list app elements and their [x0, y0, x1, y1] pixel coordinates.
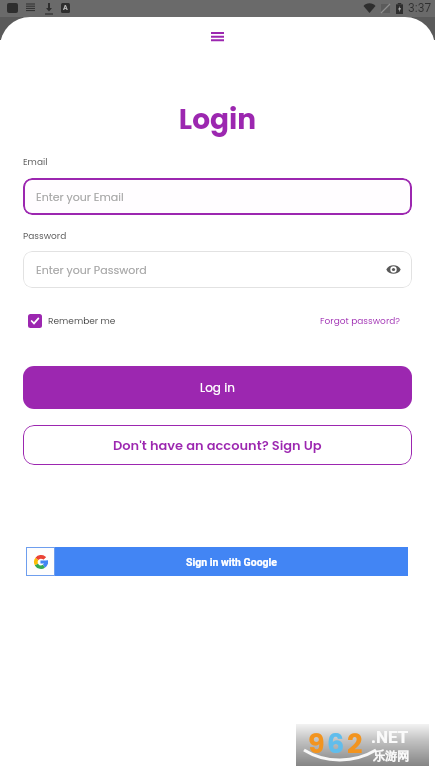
staticText: Email — [23, 156, 48, 169]
button[interactable]: Enter your Password — [23, 251, 412, 288]
button[interactable]: Enter your Email — [23, 178, 412, 215]
staticText: Log in — [200, 379, 235, 396]
button[interactable]: Don't have an account? Sign Up — [23, 425, 412, 465]
staticText: Don't have an account? Sign Up — [113, 436, 322, 454]
button[interactable]: Show password — [385, 261, 402, 278]
staticText: Sign in with Google — [186, 556, 278, 568]
staticText: .NET — [371, 727, 409, 747]
button[interactable]: Menu — [203, 25, 232, 47]
button[interactable]: Sign in with Google — [26, 547, 408, 576]
staticText: Enter your Password — [36, 262, 147, 277]
staticText: 6 — [327, 725, 345, 763]
staticText: Enter your Email — [36, 189, 124, 204]
button[interactable]: Remember me — [23, 311, 116, 331]
staticText: 3:37 — [408, 1, 432, 15]
staticText: 9 — [308, 725, 325, 763]
staticText: Password — [23, 230, 67, 243]
staticText: Forgot password? — [320, 315, 401, 328]
staticText: Remember me — [48, 315, 116, 328]
staticText: Login — [0, 100, 435, 139]
button[interactable]: Forgot password? — [320, 312, 401, 331]
staticText: 2 — [347, 725, 363, 763]
staticText: A — [63, 4, 68, 12]
staticText: 乐游网 — [373, 748, 409, 763]
button[interactable]: Log in — [23, 366, 412, 409]
